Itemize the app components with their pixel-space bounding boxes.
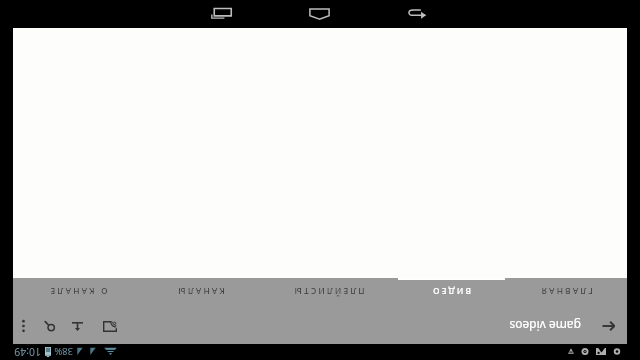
button[interactable]: Back <box>385 0 449 28</box>
button[interactable]: Home <box>288 0 352 28</box>
staticText: О КАНАЛЕ <box>48 286 108 297</box>
button[interactable]: ГЛАВНАЯ <box>505 278 627 306</box>
button[interactable]: ПЛЕЙЛИСТЫ <box>259 278 398 306</box>
staticText: ВИДЕО <box>431 286 471 297</box>
button[interactable]: Download <box>64 309 92 344</box>
button[interactable]: Search <box>37 309 65 344</box>
button[interactable]: КАНАЛЫ <box>143 278 259 306</box>
button[interactable]: ВИДЕО <box>398 278 505 306</box>
button[interactable]: Recent apps <box>190 0 254 28</box>
staticText: КАНАЛЫ <box>176 286 225 297</box>
staticText: 10:49 <box>14 345 41 359</box>
staticText: 38% <box>54 345 73 358</box>
button[interactable]: Navigate up <box>591 309 627 344</box>
button[interactable]: О КАНАЛЕ <box>13 278 143 306</box>
staticText: game videos <box>509 318 581 334</box>
staticText: ГЛАВНАЯ <box>539 286 593 297</box>
staticText: ПЛЕЙЛИСТЫ <box>292 286 365 297</box>
button[interactable]: Cast <box>95 309 125 344</box>
button[interactable]: More options <box>13 309 35 344</box>
